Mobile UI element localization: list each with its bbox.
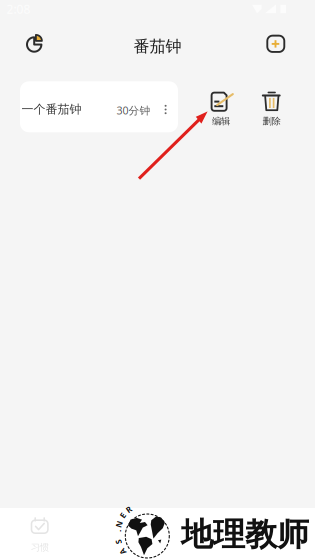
staticText: E: [121, 510, 125, 521]
staticText: N: [116, 519, 123, 529]
staticText: A: [119, 546, 125, 557]
staticText: 删除: [263, 115, 281, 127]
staticText: .: [117, 525, 119, 536]
staticText: 一个番茄钟: [21, 102, 81, 117]
staticText: R: [126, 504, 131, 515]
staticText: S: [116, 537, 120, 547]
button[interactable]: 习惯: [0, 508, 105, 560]
button[interactable]: 统计: [12, 21, 56, 65]
staticText: 番茄钟: [133, 36, 181, 56]
button[interactable]: 编辑: [198, 86, 246, 128]
staticText: 编辑: [212, 115, 230, 127]
button[interactable]: 删除: [248, 86, 296, 128]
button[interactable]: 添加: [254, 22, 298, 66]
button[interactable]: 一个番茄钟: [20, 81, 178, 132]
staticText: 地理教师: [181, 515, 309, 554]
staticText: 习惯: [31, 542, 49, 553]
staticText: 30分钟: [116, 103, 150, 117]
